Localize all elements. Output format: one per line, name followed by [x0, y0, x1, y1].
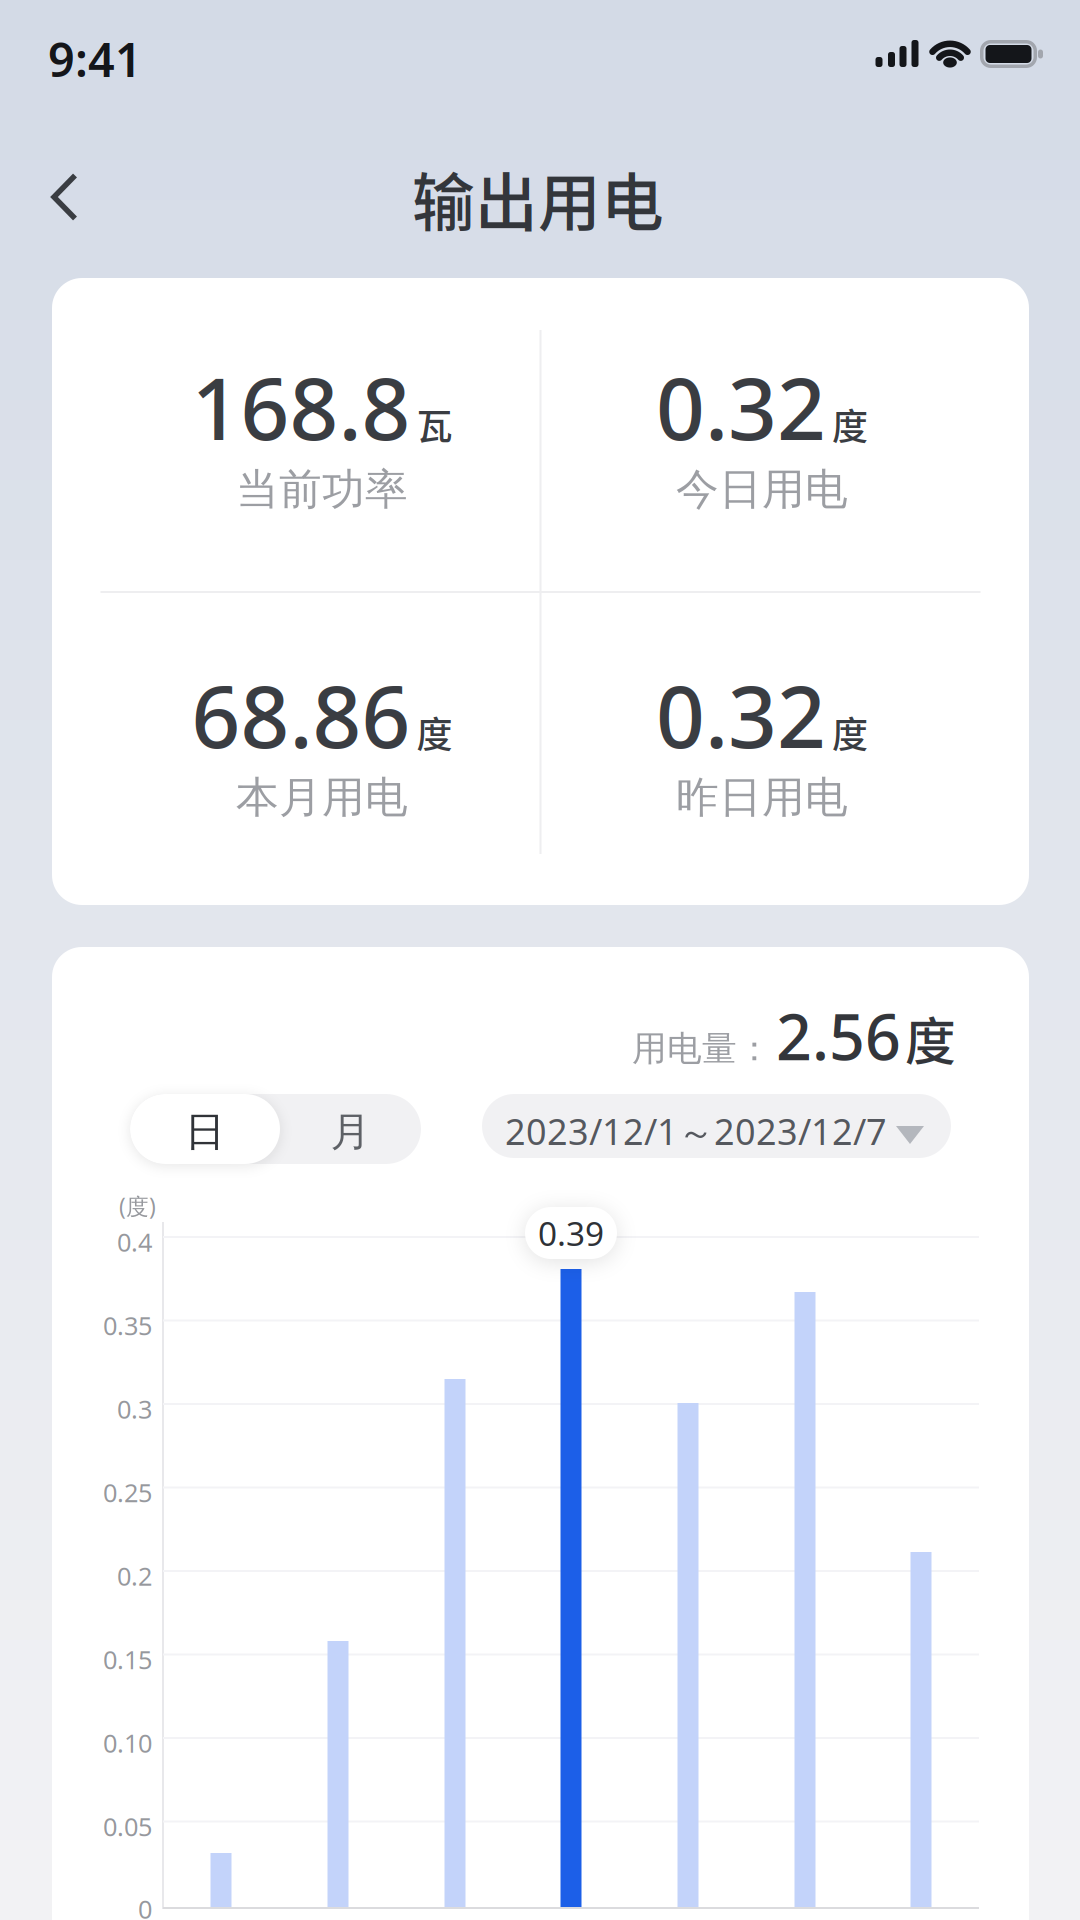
staticText: 0.32	[656, 658, 826, 771]
staticText: 0.4	[117, 1225, 152, 1259]
staticText: 68.86	[191, 658, 410, 771]
staticText: 2023/12/1～2023/12/7	[505, 1107, 887, 1155]
staticText: 本月用电	[236, 771, 408, 824]
staticText: 度	[832, 398, 868, 450]
staticText: 日	[185, 1107, 225, 1156]
staticText: 0	[138, 1892, 152, 1920]
staticText: 2.56	[776, 994, 901, 1078]
staticText: 0.39	[538, 1211, 604, 1255]
staticText: 今日用电	[676, 463, 848, 516]
button[interactable]: Back	[54, 175, 75, 218]
staticText: 度	[905, 1001, 956, 1075]
staticText: 168.8	[191, 350, 410, 463]
staticText: 0.05	[103, 1810, 152, 1843]
staticText: 输出用电	[412, 153, 664, 243]
staticText: 0.32	[656, 350, 826, 463]
staticText: 0.10	[103, 1726, 152, 1760]
button[interactable]: 2023/12/1～2023/12/7	[482, 1094, 951, 1158]
staticText: 度	[416, 706, 452, 758]
button[interactable]: 月	[280, 1094, 421, 1164]
button[interactable]: 日	[130, 1094, 280, 1164]
staticText: 0.25	[103, 1476, 152, 1509]
staticText: 月	[330, 1107, 370, 1156]
staticText: 0.3	[117, 1392, 152, 1426]
staticText: 9:41	[48, 28, 142, 90]
staticText: 0.2	[117, 1559, 152, 1593]
staticText: 瓦	[416, 398, 452, 450]
staticText: 度	[832, 706, 868, 758]
staticText: 昨日用电	[676, 771, 848, 824]
staticText: 用电量：	[632, 1027, 772, 1070]
staticText: 当前功率	[236, 463, 408, 516]
staticText: 0.35	[103, 1309, 152, 1342]
staticText: 0.15	[103, 1643, 152, 1676]
staticText: (度)	[119, 1191, 156, 1221]
